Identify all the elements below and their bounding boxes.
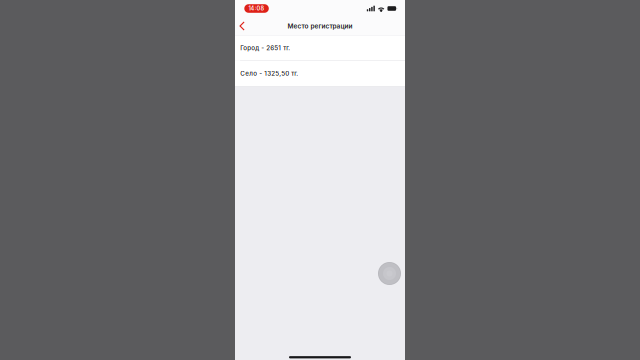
- staticText: Место регистрации: [287, 22, 352, 30]
- button[interactable]: Город - 2651 тг.: [235, 35, 405, 60]
- staticText: 14:08: [249, 5, 265, 12]
- staticText: Село - 1325,50 тг.: [240, 70, 298, 77]
- button[interactable]: Село - 1325,50 тг.: [235, 61, 405, 86]
- button[interactable]: Back: [235, 17, 251, 35]
- staticText: Город - 2651 тг.: [240, 44, 290, 52]
- button[interactable]: AssistiveTouch: [378, 262, 401, 285]
